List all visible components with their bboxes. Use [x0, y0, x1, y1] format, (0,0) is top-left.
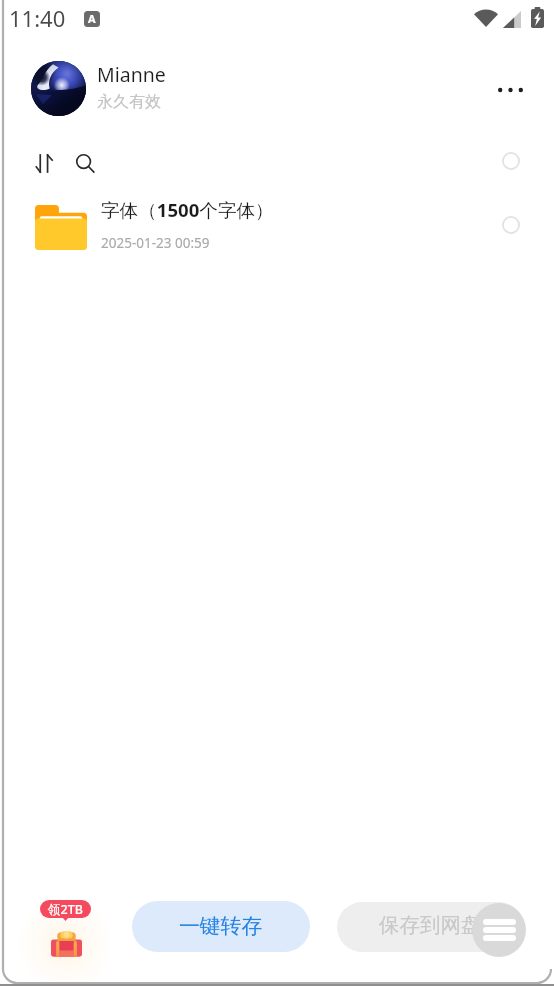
- button[interactable]: 保存到网盘: [337, 902, 524, 952]
- button[interactable]: 一键转存: [132, 901, 310, 952]
- staticText: 字体（1500个字体）: [101, 197, 274, 222]
- staticText: Mianne: [97, 61, 166, 88]
- button[interactable]: Search: [66, 144, 104, 182]
- button[interactable]: More options: [487, 66, 533, 112]
- button[interactable]: 字体（1500个字体）: [0, 192, 554, 258]
- button[interactable]: Select all: [493, 143, 529, 179]
- staticText: 保存到网盘: [379, 912, 482, 938]
- staticText: 一键转存: [179, 913, 263, 939]
- button[interactable]: Mianne: [31, 55, 261, 121]
- staticText: 11:40: [9, 3, 66, 33]
- staticText: A: [88, 11, 96, 26]
- button[interactable]: Get 2TB gift: [36, 898, 98, 962]
- staticText: 2025-01-23 00:59: [101, 234, 210, 252]
- button[interactable]: Sort: [25, 144, 63, 182]
- staticText: 领2TB: [48, 901, 83, 918]
- staticText: 永久有效: [97, 92, 161, 112]
- button[interactable]: Menu: [472, 903, 526, 957]
- button[interactable]: Select item: [493, 207, 529, 243]
